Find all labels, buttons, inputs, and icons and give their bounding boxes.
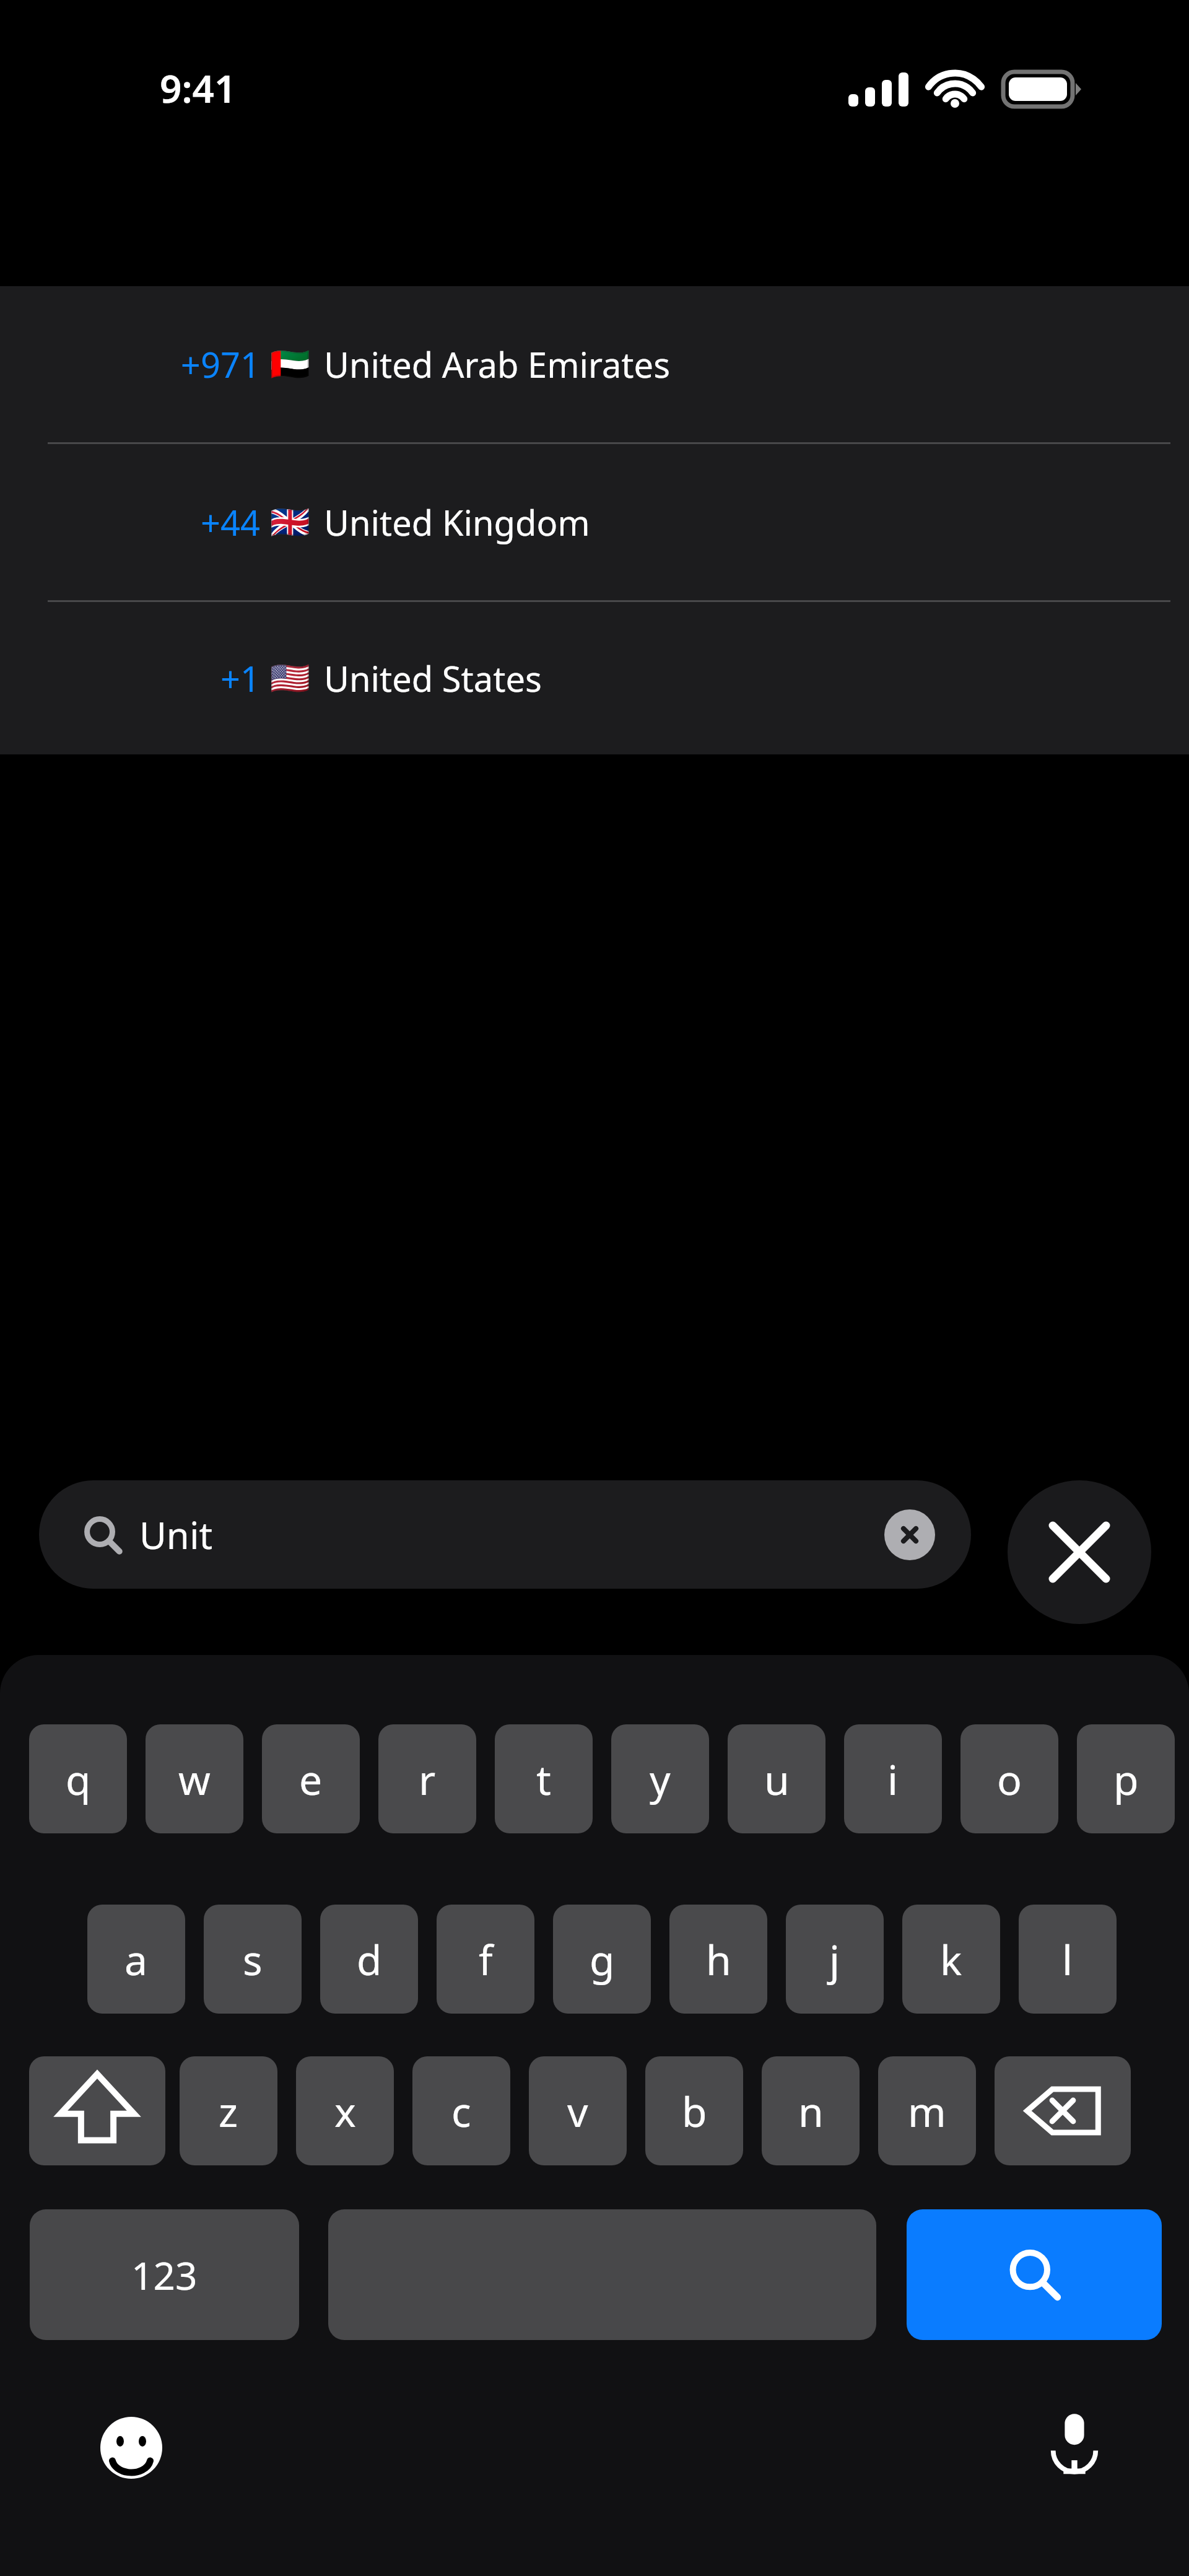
staticText: h xyxy=(706,1931,731,1987)
button[interactable]: Search xyxy=(907,2209,1162,2340)
staticText: y xyxy=(650,1751,671,1807)
button[interactable]: Clear text xyxy=(884,1509,935,1560)
button[interactable]: c xyxy=(412,2056,510,2165)
button[interactable]: z xyxy=(180,2056,277,2165)
staticText: l xyxy=(1062,1931,1073,1987)
staticText: b xyxy=(682,2083,707,2139)
staticText: +971 xyxy=(180,341,260,388)
staticText: o xyxy=(997,1751,1022,1807)
button[interactable]: w xyxy=(146,1724,243,1833)
button[interactable]: n xyxy=(762,2056,860,2165)
staticText: x xyxy=(334,2083,356,2139)
staticText: d xyxy=(357,1931,382,1987)
staticText: p xyxy=(1113,1751,1139,1807)
staticText: 🇺🇸 xyxy=(270,660,310,697)
staticText: m xyxy=(908,2083,946,2139)
button[interactable]: j xyxy=(786,1905,884,2014)
staticText: 9:41 xyxy=(160,62,237,114)
staticText: a xyxy=(124,1931,148,1987)
button[interactable]: s xyxy=(204,1905,302,2014)
button[interactable]: +44 xyxy=(0,444,1189,600)
button[interactable]: f xyxy=(437,1905,534,2014)
staticText: v xyxy=(567,2083,588,2139)
staticText: j xyxy=(829,1931,840,1987)
button[interactable]: v xyxy=(529,2056,627,2165)
staticText: 🇦🇪 xyxy=(270,346,310,383)
button[interactable]: t xyxy=(495,1724,593,1833)
button[interactable]: g xyxy=(553,1905,651,2014)
button[interactable]: o xyxy=(960,1724,1058,1833)
button[interactable]: u xyxy=(728,1724,825,1833)
button[interactable]: r xyxy=(378,1724,476,1833)
staticText: 123 xyxy=(131,2249,198,2301)
staticText: +44 xyxy=(200,499,260,546)
button[interactable]: Backspace xyxy=(995,2056,1131,2165)
staticText: United Kingdom xyxy=(324,499,590,546)
button[interactable]: h xyxy=(669,1905,767,2014)
staticText: 🇬🇧 xyxy=(270,504,310,541)
staticText: s xyxy=(243,1931,263,1987)
button[interactable]: e xyxy=(262,1724,360,1833)
button[interactable]: Unit xyxy=(39,1480,971,1589)
button[interactable]: a xyxy=(87,1905,185,2014)
button[interactable]: i xyxy=(844,1724,942,1833)
button[interactable]: +971 xyxy=(0,286,1189,442)
button[interactable]: Close xyxy=(1008,1480,1151,1624)
staticText: u xyxy=(764,1751,790,1807)
button[interactable]: m xyxy=(878,2056,976,2165)
staticText: n xyxy=(798,2083,824,2139)
button[interactable]: p xyxy=(1077,1724,1175,1833)
staticText: i xyxy=(887,1751,899,1807)
staticText: k xyxy=(940,1931,962,1987)
button[interactable]: b xyxy=(645,2056,743,2165)
button[interactable]: y xyxy=(611,1724,709,1833)
button[interactable]: Shift xyxy=(29,2056,165,2165)
staticText: United States xyxy=(324,655,542,702)
staticText: w xyxy=(178,1751,211,1807)
staticText: q xyxy=(66,1751,91,1807)
button[interactable]: q xyxy=(29,1724,127,1833)
staticText: +1 xyxy=(220,655,260,702)
button[interactable]: Voice input xyxy=(1028,2396,1121,2489)
staticText: r xyxy=(419,1751,436,1807)
staticText: g xyxy=(590,1931,615,1987)
staticText: t xyxy=(536,1751,551,1807)
staticText: United Arab Emirates xyxy=(324,341,670,388)
button[interactable]: 123 xyxy=(30,2209,299,2340)
staticText: c xyxy=(451,2083,471,2139)
button[interactable]: +1 xyxy=(0,602,1189,754)
button[interactable]: l xyxy=(1019,1905,1117,2014)
staticText: z xyxy=(219,2083,238,2139)
button[interactable]: Space xyxy=(328,2209,876,2340)
button[interactable]: k xyxy=(902,1905,1000,2014)
button[interactable]: x xyxy=(296,2056,394,2165)
staticText: e xyxy=(299,1751,323,1807)
button[interactable]: Emoji xyxy=(85,2402,177,2494)
staticText: Unit xyxy=(139,1509,213,1560)
staticText: f xyxy=(479,1931,493,1987)
button[interactable]: d xyxy=(320,1905,418,2014)
